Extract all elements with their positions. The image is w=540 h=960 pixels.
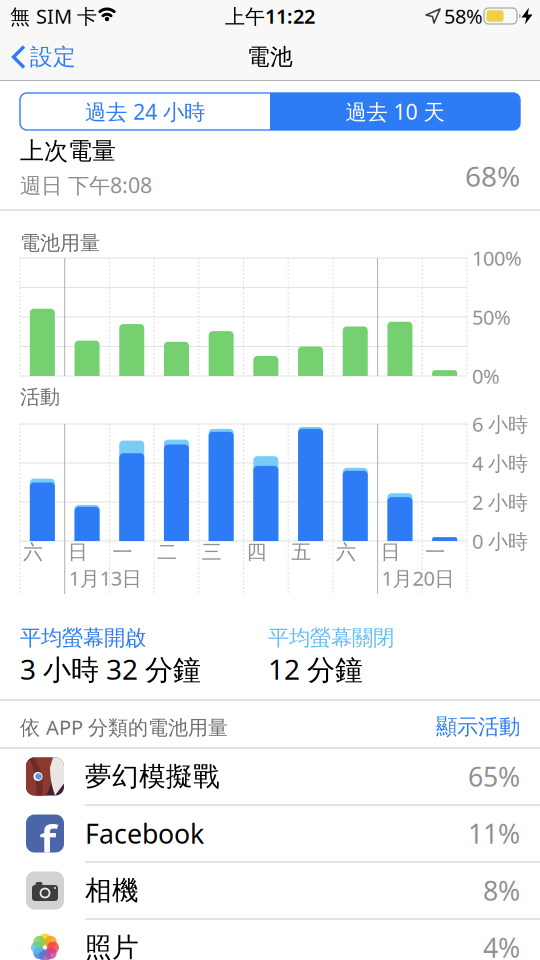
staticText: 依 APP 分類的電池用量 xyxy=(20,714,228,740)
button[interactable]: 夢幻模擬戰 xyxy=(0,748,540,805)
staticText: 四 xyxy=(246,540,266,564)
staticText: 無 SIM 卡 xyxy=(10,3,97,29)
staticText: 一 xyxy=(425,540,445,564)
staticText: 1月20日 xyxy=(382,565,455,591)
staticText: Facebook xyxy=(85,816,204,851)
staticText: 0 小時 xyxy=(472,528,528,554)
staticText: 六 xyxy=(23,540,43,564)
button[interactable]: 設定 xyxy=(10,35,95,79)
staticText: 日 xyxy=(68,540,88,564)
staticText: 100% xyxy=(472,245,522,271)
staticText: 58% xyxy=(444,3,483,29)
staticText: 12 分鐘 xyxy=(268,650,363,688)
button[interactable]: 相機 xyxy=(0,862,540,919)
staticText: 4% xyxy=(483,930,520,960)
staticText: 電池 xyxy=(247,43,293,71)
staticText: 3 小時 32 分鐘 xyxy=(20,650,201,688)
staticText: 上次電量 xyxy=(20,136,116,166)
staticText: 平均螢幕開啟 xyxy=(20,625,146,651)
staticText: 過去 24 小時 xyxy=(85,97,205,126)
staticText: 顯示活動 xyxy=(436,714,520,740)
button[interactable]: 照片 xyxy=(0,919,540,960)
button[interactable]: 過去 24 小時 xyxy=(20,93,270,130)
staticText: 夢幻模擬戰 xyxy=(85,760,220,793)
staticText: 相機 xyxy=(85,874,139,907)
staticText: 68% xyxy=(465,157,520,195)
staticText: 照片 xyxy=(85,931,139,960)
staticText: 設定 xyxy=(30,43,76,71)
button[interactable]: 過去 10 天 xyxy=(270,93,520,130)
button[interactable]: f xyxy=(0,805,540,862)
button[interactable]: 顯示活動 xyxy=(410,707,520,747)
staticText: 三 xyxy=(202,540,222,564)
staticText: 五 xyxy=(291,540,311,564)
staticText: 1月13日 xyxy=(69,565,142,591)
staticText: 11% xyxy=(468,816,520,851)
staticText: f xyxy=(39,810,56,871)
staticText: 2 小時 xyxy=(472,489,528,515)
staticText: 6 小時 xyxy=(472,411,528,437)
staticText: 平均螢幕關閉 xyxy=(268,625,394,651)
staticText: 50% xyxy=(472,304,511,330)
staticText: 二 xyxy=(157,540,177,564)
staticText: 65% xyxy=(468,759,520,794)
staticText: 一 xyxy=(112,540,132,564)
staticText: 0% xyxy=(472,363,500,389)
staticText: 8% xyxy=(483,873,520,908)
staticText: 活動 xyxy=(20,385,60,409)
staticText: 4 小時 xyxy=(472,450,528,476)
staticText: 過去 10 天 xyxy=(345,97,444,126)
staticText: 電池用量 xyxy=(20,231,100,255)
staticText: 上午11:22 xyxy=(225,3,315,29)
staticText: 六 xyxy=(336,540,356,564)
staticText: 日 xyxy=(381,540,401,564)
staticText: 週日 下午8:08 xyxy=(20,171,152,199)
